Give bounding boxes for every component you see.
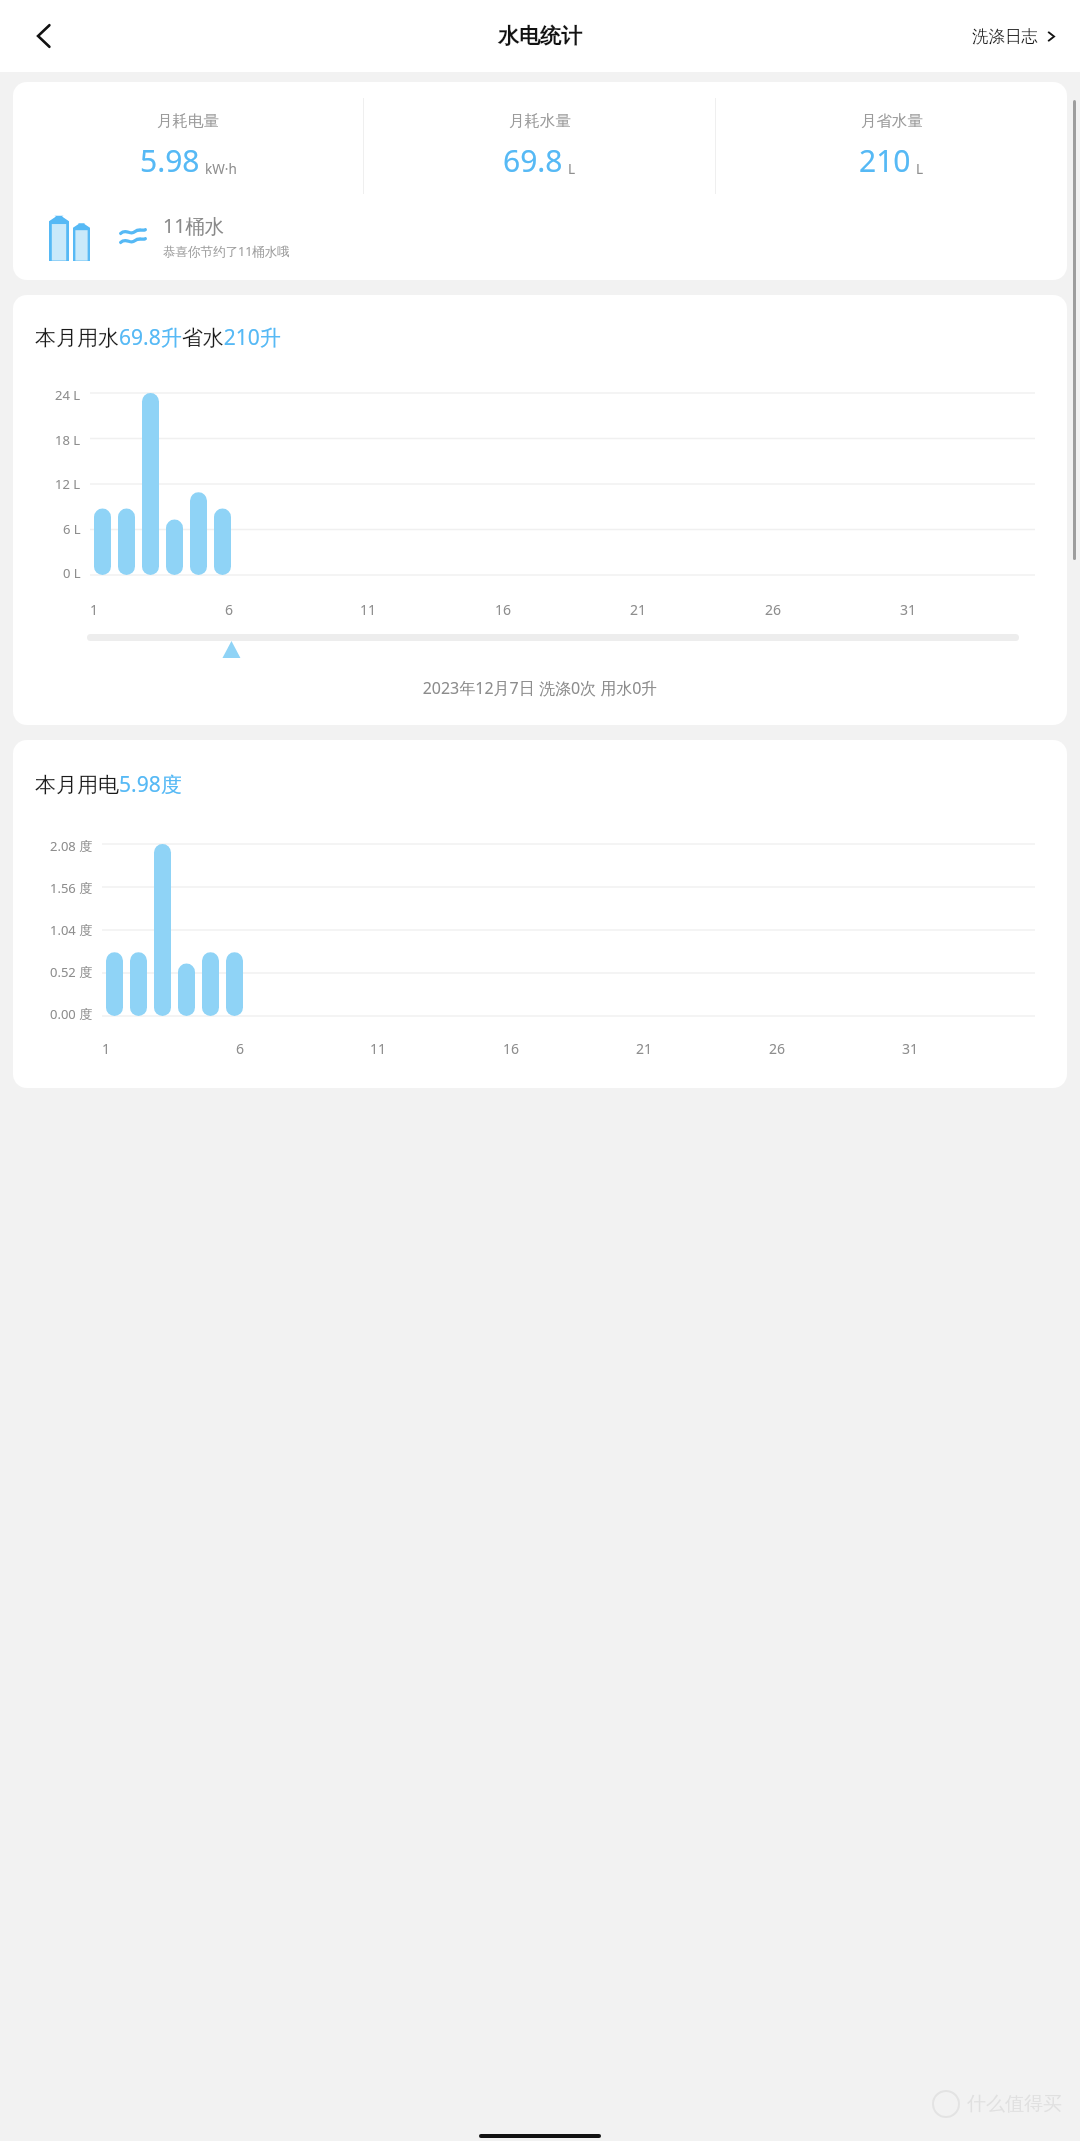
- staticText: 1: [90, 600, 99, 619]
- staticText: 本月用电5.98度: [35, 770, 182, 799]
- staticText: 什么值得买: [967, 2092, 1062, 2116]
- staticText: 1: [102, 1039, 111, 1058]
- staticText: 5.98: [140, 140, 200, 181]
- staticText: 21: [636, 1039, 653, 1058]
- staticText: 26: [769, 1039, 786, 1058]
- staticText: 1.56 度: [50, 879, 93, 897]
- staticText: 本月用水69.8升省水210升: [35, 323, 281, 352]
- staticText: 水电统计: [498, 23, 582, 49]
- staticText: L: [916, 160, 924, 178]
- staticText: 0 L: [63, 564, 81, 582]
- staticText: 11: [360, 600, 377, 619]
- staticText: 1.04 度: [50, 921, 93, 939]
- staticText: 69.8: [503, 140, 563, 181]
- staticText: 24 L: [55, 386, 81, 404]
- staticText: 11桶水: [163, 212, 225, 239]
- staticText: L: [568, 160, 576, 178]
- staticText: 31: [900, 600, 917, 619]
- staticText: 6: [236, 1039, 245, 1058]
- staticText: 11: [370, 1039, 387, 1058]
- staticText: 0.00 度: [50, 1005, 93, 1023]
- staticText: 月省水量: [861, 111, 923, 131]
- staticText: 18 L: [55, 431, 81, 449]
- staticText: 2023年12月7日 洗涤0次 用水0升: [13, 677, 1067, 699]
- staticText: 16: [503, 1039, 520, 1058]
- staticText: 月耗水量: [509, 111, 571, 131]
- staticText: 12 L: [55, 475, 81, 493]
- staticText: 16: [495, 600, 512, 619]
- staticText: 月耗电量: [157, 111, 219, 131]
- staticText: 26: [765, 600, 782, 619]
- button[interactable]: Day slider: [87, 631, 1019, 657]
- button[interactable]: 洗涤日志: [966, 20, 1064, 53]
- staticText: 0.52 度: [50, 963, 93, 981]
- staticText: 2.08 度: [50, 837, 93, 855]
- staticText: 21: [630, 600, 647, 619]
- staticText: 6: [225, 600, 234, 619]
- staticText: 31: [902, 1039, 919, 1058]
- staticText: 210: [859, 140, 911, 181]
- staticText: 恭喜你节约了11桶水哦: [163, 243, 290, 260]
- staticText: kW·h: [205, 160, 237, 178]
- staticText: 6 L: [63, 520, 81, 538]
- button[interactable]: Back: [20, 12, 68, 60]
- staticText: 洗涤日志: [972, 26, 1038, 47]
